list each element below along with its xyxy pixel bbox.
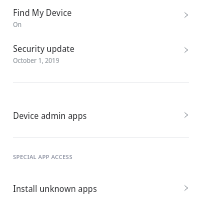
button[interactable]: Install unknown apps: [0, 177, 200, 199]
staticText: Find My Device: [13, 7, 72, 18]
button[interactable]: Find My Device: [0, 0, 200, 38]
button[interactable]: Security update: [0, 43, 200, 73]
staticText: On: [13, 20, 22, 28]
other: Open Install unknown apps: [183, 184, 191, 192]
staticText: Install unknown apps: [13, 183, 97, 194]
staticText: October 1, 2019: [13, 56, 60, 64]
staticText: Device admin apps: [13, 110, 87, 121]
staticText: SPECIAL APP ACCESS: [13, 153, 73, 161]
staticText: Security update: [13, 43, 75, 54]
button[interactable]: Device admin apps: [0, 104, 200, 126]
